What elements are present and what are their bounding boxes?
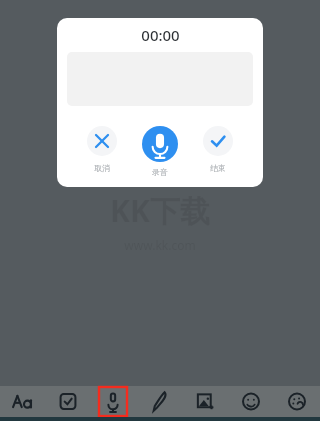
staticText: 取消 [94,163,110,173]
button[interactable]: Theme [274,386,320,417]
staticText: 录音 [152,167,168,177]
button[interactable]: Record [137,125,183,178]
button[interactable]: Text style [0,386,45,417]
staticText: KK下载 [110,190,210,231]
staticText: 结束 [210,163,226,173]
staticText: 00:00 [141,25,180,45]
button[interactable]: Draw [136,386,182,417]
button[interactable]: Emoji [228,386,274,417]
button[interactable]: Cancel [79,125,125,174]
button[interactable]: Voice record [90,386,136,417]
button[interactable]: Insert image [182,386,228,417]
button[interactable]: Checklist [45,386,90,417]
button[interactable]: Finish [195,125,241,174]
